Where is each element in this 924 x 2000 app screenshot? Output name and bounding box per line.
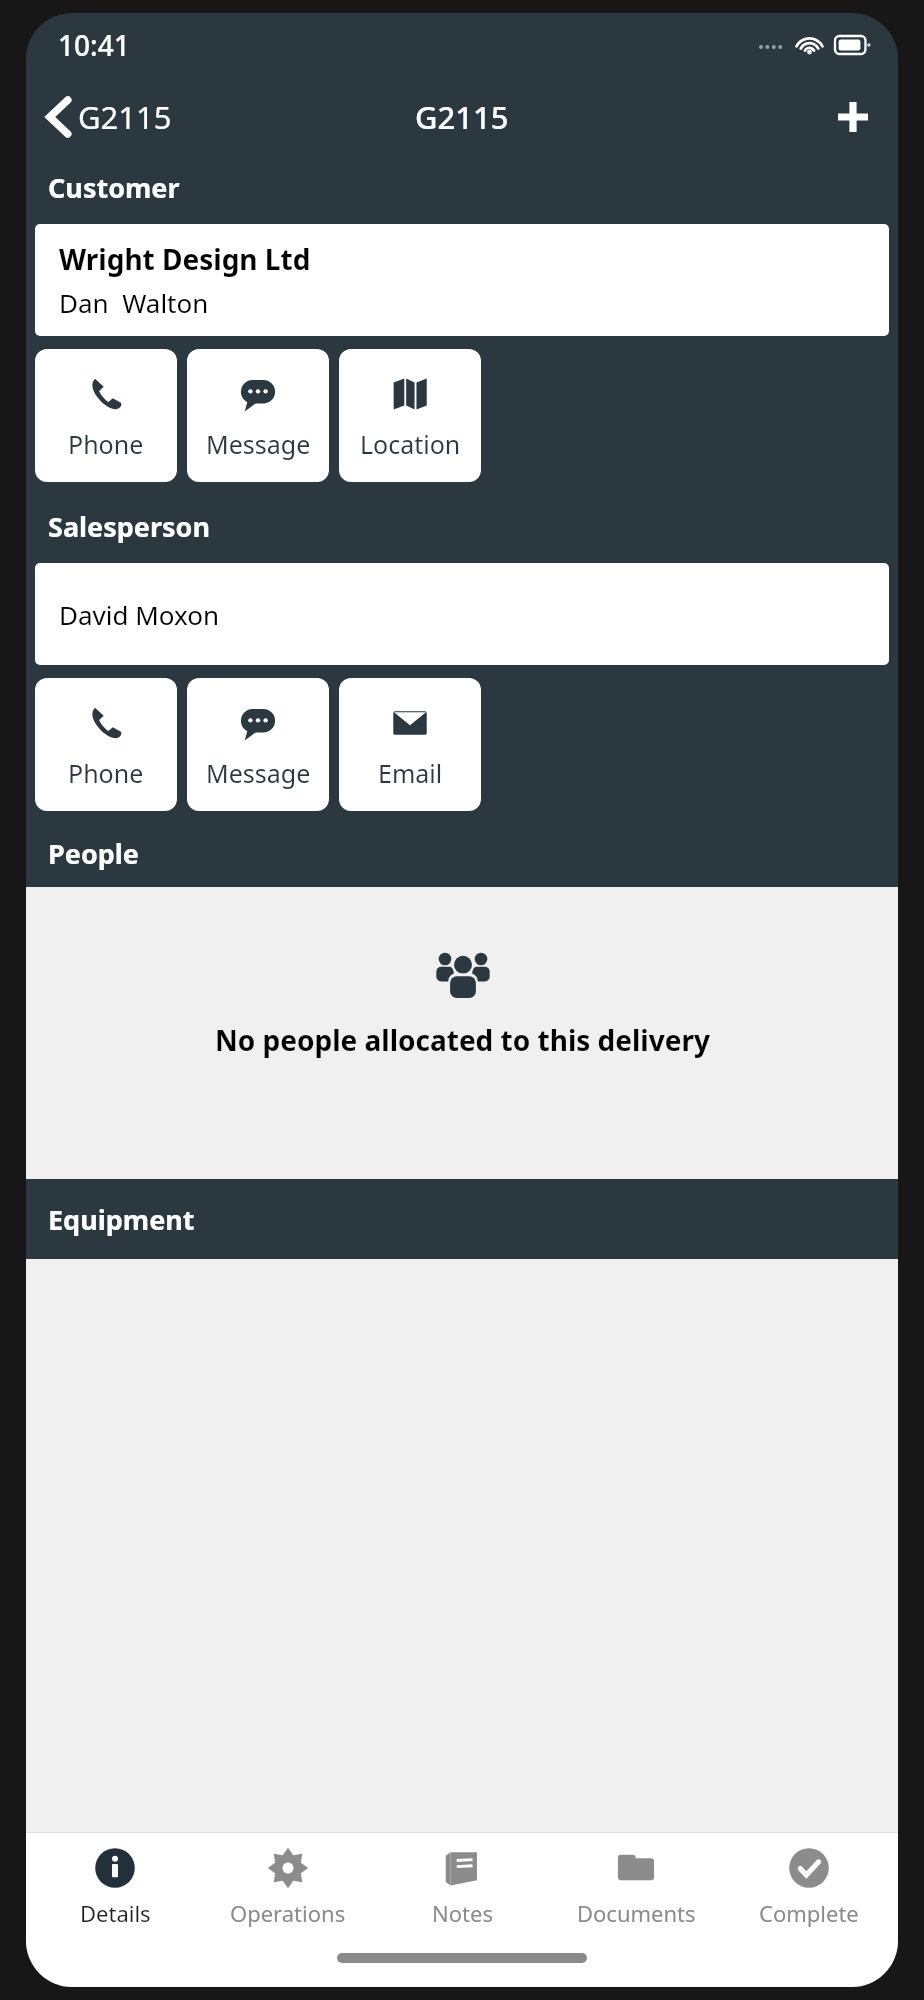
button[interactable]: Complete [724, 1833, 894, 1941]
button[interactable]: Notes [377, 1833, 547, 1941]
staticText: 10:41 [58, 26, 130, 64]
button[interactable]: Message [187, 678, 329, 811]
staticText: David Moxon [59, 597, 220, 632]
button[interactable]: Email [339, 678, 481, 811]
staticText: Operations [230, 1898, 346, 1928]
button[interactable]: Operations [203, 1833, 373, 1941]
staticText: G2115 [415, 96, 509, 138]
staticText: Email [378, 756, 443, 790]
staticText: Wright Design Ltd [59, 240, 311, 278]
staticText: Documents [577, 1898, 696, 1928]
button[interactable]: Location [339, 349, 481, 482]
staticText: Complete [759, 1898, 859, 1928]
staticText: G2115 [78, 96, 172, 138]
staticText: Phone [68, 427, 144, 461]
button[interactable]: Message [187, 349, 329, 482]
staticText: Location [360, 427, 461, 461]
button[interactable]: Phone [35, 349, 177, 482]
button[interactable]: Documents [551, 1833, 721, 1941]
staticText: Notes [432, 1898, 493, 1928]
button[interactable]: Details [30, 1833, 200, 1941]
button[interactable]: David Moxon [35, 563, 889, 665]
staticText: Phone [68, 756, 144, 790]
button[interactable]: G2115 [40, 88, 180, 146]
staticText: Dan Walton [59, 285, 209, 320]
staticText: Salesperson [48, 508, 210, 545]
button[interactable]: Wright Design Ltd [35, 224, 889, 336]
staticText: Customer [48, 169, 180, 206]
staticText: No people allocated to this delivery [215, 1021, 710, 1059]
staticText: Message [206, 427, 311, 461]
button[interactable]: Add [826, 90, 880, 144]
staticText: Details [80, 1898, 151, 1928]
staticText: Equipment [48, 1201, 195, 1238]
button[interactable]: Phone [35, 678, 177, 811]
staticText: Message [206, 756, 311, 790]
staticText: People [48, 835, 139, 872]
